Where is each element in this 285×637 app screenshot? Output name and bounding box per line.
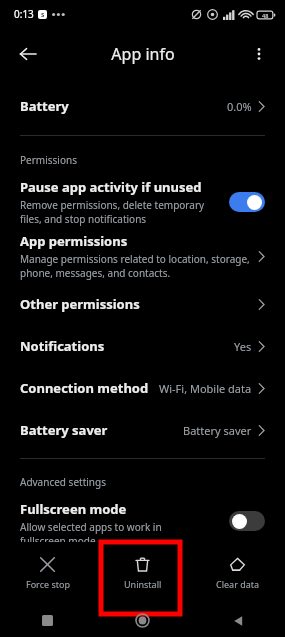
button[interactable]: Home	[95, 604, 190, 637]
staticText: Remove permissions, delete temporary fil…	[20, 198, 205, 226]
button[interactable]: Notifications	[0, 328, 285, 364]
staticText: Force stop	[26, 578, 70, 590]
staticText: 0:13	[14, 7, 34, 21]
button[interactable]: Clear data	[190, 542, 285, 604]
staticText: Battery saver	[183, 423, 252, 438]
staticText: Manage permissions related to location, …	[20, 252, 250, 280]
button[interactable]: Battery saver	[0, 412, 285, 448]
staticText: Uninstall	[124, 578, 162, 590]
staticText: Battery saver	[20, 421, 108, 439]
staticText: Battery	[20, 97, 69, 115]
button[interactable]: Back	[190, 604, 285, 637]
button[interactable]: Connection method	[0, 370, 285, 406]
button[interactable]: Pause app activity if unused	[0, 178, 285, 226]
button[interactable]: More options	[239, 34, 279, 74]
button[interactable]: Other permissions	[0, 286, 285, 322]
button[interactable]: Fullscreen mode	[0, 500, 285, 542]
button[interactable]: Uninstall	[95, 542, 190, 604]
staticText: 0.0%	[227, 99, 252, 114]
button[interactable]: Battery	[0, 86, 285, 126]
staticText: Other permissions	[20, 295, 140, 313]
button[interactable]: App permissions	[0, 232, 285, 280]
staticText: Permissions	[20, 153, 77, 167]
staticText: Allow selected apps to work in fullscree…	[20, 520, 162, 542]
staticText: Wi-Fi, Mobile data	[159, 381, 252, 396]
staticText: S	[41, 11, 45, 19]
staticText: App info	[111, 43, 175, 65]
button[interactable]	[229, 511, 265, 531]
staticText: Advanced settings	[20, 475, 106, 489]
staticText: App permissions	[20, 232, 128, 250]
button[interactable]: Force stop	[0, 542, 95, 604]
staticText: Fullscreen mode	[20, 500, 127, 518]
staticText: Pause app activity if unused	[20, 178, 202, 196]
staticText: Connection method	[20, 379, 149, 397]
staticText: 48	[262, 12, 269, 19]
staticText: Clear data	[216, 578, 260, 590]
staticText: Yes	[234, 339, 252, 354]
button[interactable]: Recent apps	[0, 604, 95, 637]
button[interactable]	[229, 192, 265, 212]
staticText: Notifications	[20, 337, 105, 355]
button[interactable]: Back	[8, 34, 48, 74]
